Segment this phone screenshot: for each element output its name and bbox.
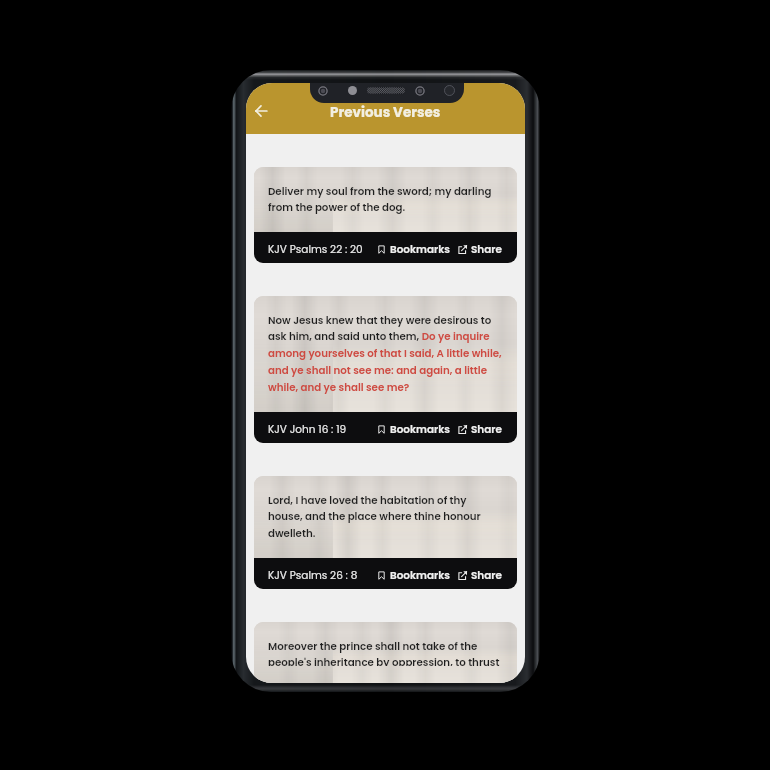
button[interactable]: Now Jesus knew that they were desirous t…: [254, 296, 517, 443]
staticText: Moreover the prince shall not take of th…: [268, 639, 502, 666]
button[interactable]: Lord, I have loved the habitation of thy…: [254, 476, 517, 589]
staticText: Share: [471, 242, 502, 257]
staticText: Share: [471, 422, 502, 437]
button[interactable]: Deliver my soul from the sword; my darli…: [254, 167, 517, 263]
button[interactable]: Bookmarks: [377, 568, 450, 583]
button[interactable]: Bookmarks: [377, 422, 450, 437]
staticText: Lord, I have loved the habitation of thy…: [268, 493, 502, 541]
staticText: Bookmarks: [390, 568, 450, 583]
button[interactable]: Share: [458, 568, 502, 583]
staticText: Share: [471, 568, 502, 583]
button[interactable]: Back: [247, 97, 275, 125]
button[interactable]: Share: [458, 422, 502, 437]
staticText: Now Jesus knew that they were desirous t…: [268, 313, 502, 395]
staticText: KJV Psalms 22 : 20: [268, 242, 363, 257]
button[interactable]: Moreover the prince shall not take of th…: [254, 622, 517, 683]
staticText: Deliver my soul from the sword; my darli…: [268, 184, 502, 215]
staticText: Bookmarks: [390, 422, 450, 437]
staticText: Bookmarks: [390, 242, 450, 257]
staticText: Previous Verses: [330, 103, 441, 122]
staticText: KJV John 16 : 19: [268, 422, 347, 437]
button[interactable]: Bookmarks: [377, 242, 450, 257]
staticText: KJV Psalms 26 : 8: [268, 568, 358, 583]
button[interactable]: Share: [458, 242, 502, 257]
